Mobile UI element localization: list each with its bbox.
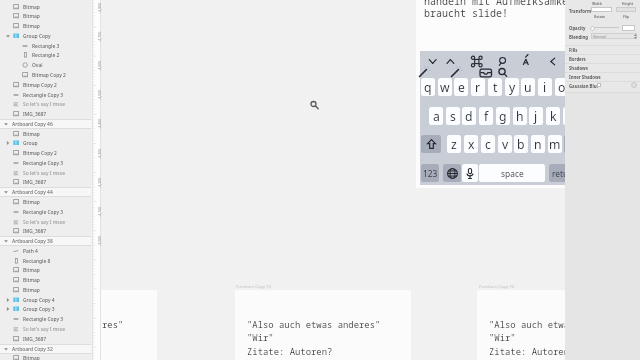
button[interactable]: Bitmap	[0, 11, 91, 21]
button[interactable]: y	[505, 78, 519, 96]
button[interactable]: Artboard Copy 32	[0, 344, 91, 354]
staticText: h	[516, 108, 524, 125]
button[interactable]: Inner Shadows	[565, 72, 640, 81]
button[interactable]: e	[454, 78, 468, 96]
staticText: "Also auch etwas anderes"	[247, 318, 381, 330]
button[interactable]: Rectangle Copy 3	[0, 158, 91, 168]
button[interactable]: Shadows	[565, 63, 640, 72]
staticText: w	[440, 79, 450, 96]
button[interactable]: space	[479, 164, 545, 182]
button[interactable]: IMG_3687	[0, 109, 91, 119]
button[interactable]: x	[464, 135, 478, 153]
button[interactable]: m	[548, 135, 562, 153]
button[interactable]: So let's say I msse	[0, 217, 91, 227]
button[interactable]: d	[462, 107, 476, 125]
button[interactable]: Group Copy	[0, 31, 91, 41]
button[interactable]: Artboard Copy 44	[0, 187, 91, 197]
button[interactable]: p	[571, 78, 585, 96]
staticText: Width	[592, 1, 602, 5]
staticText: Height	[622, 1, 634, 5]
staticText: Bitmap	[23, 267, 40, 274]
staticText: t	[493, 79, 498, 96]
button[interactable]: Rectangle Copy 3	[0, 207, 91, 217]
button[interactable]: IMG_3687	[0, 177, 91, 187]
staticText: d	[465, 108, 473, 125]
staticText: Bitmap	[23, 4, 40, 11]
button[interactable]: So let's say I msse	[0, 324, 91, 334]
button[interactable]: IMG_3687	[0, 226, 91, 236]
button[interactable]: return	[549, 164, 579, 182]
button[interactable]: n	[531, 135, 545, 153]
button[interactable]: Group Copy 3	[0, 304, 91, 314]
button[interactable]: Bitmap	[0, 197, 91, 207]
staticText: Bitmap	[23, 287, 40, 294]
button[interactable]: IMG_3687	[0, 334, 91, 344]
staticText: Bitmap	[23, 13, 40, 20]
button[interactable]: h	[513, 107, 527, 125]
staticText: res"	[102, 318, 124, 330]
button[interactable]: Gaussian Blur	[565, 81, 640, 90]
staticText: Bitmap Copy 2	[23, 150, 57, 157]
button[interactable]: Bitmap	[0, 2, 91, 12]
button[interactable]: Artboard Copy 38	[0, 236, 91, 246]
button[interactable]: w	[438, 78, 452, 96]
button[interactable]: Fills	[565, 45, 640, 54]
staticText: Bitmap	[23, 23, 40, 30]
staticText: Transform	[569, 8, 592, 14]
staticText: z	[451, 136, 457, 153]
button[interactable]: Bitmap	[0, 129, 91, 139]
staticText: Group Copy	[23, 33, 51, 40]
staticText: Furniture Copy 74	[479, 284, 515, 290]
button[interactable]: j	[529, 107, 543, 125]
button[interactable]: Rectangle 8	[0, 256, 91, 266]
staticText: Bitmap	[23, 355, 40, 360]
staticText: Rectangle 3	[32, 43, 60, 50]
button[interactable]: v	[498, 135, 512, 153]
button[interactable]: t	[488, 78, 502, 96]
button[interactable]: f	[479, 107, 493, 125]
staticText: Path 4	[23, 248, 38, 255]
button[interactable]: s	[446, 107, 460, 125]
button[interactable]: Rectangle Copy 3	[0, 90, 91, 100]
button[interactable]: So let's say I msse	[0, 99, 91, 109]
button[interactable]: Rectangle 3	[0, 41, 91, 51]
button[interactable]: Rectangle 2	[0, 50, 91, 60]
button[interactable]: Bitmap Copy 2	[0, 80, 91, 90]
staticText: braucht slide!	[424, 6, 508, 20]
button[interactable]: Group	[0, 138, 91, 148]
button[interactable]: Backspace	[564, 135, 584, 153]
button[interactable]: Oval	[0, 60, 91, 70]
staticText: Group Copy 3	[23, 306, 55, 313]
button[interactable]: Bitmap	[0, 265, 91, 275]
button[interactable]: g	[496, 107, 510, 125]
button[interactable]: o	[555, 78, 569, 96]
button[interactable]: Bitmap	[0, 21, 91, 31]
staticText: Rectangle Copy 3	[23, 160, 64, 167]
button[interactable]: a	[429, 107, 443, 125]
button[interactable]: Group Copy 4	[0, 295, 91, 305]
button[interactable]: Borders	[565, 54, 640, 63]
button[interactable]: Change keyboard	[443, 164, 461, 182]
button[interactable]: Shift	[421, 135, 441, 153]
button[interactable]: r	[471, 78, 485, 96]
button[interactable]: Bitmap Copy 2	[0, 70, 91, 80]
button[interactable]: u	[521, 78, 535, 96]
button[interactable]: Bitmap	[0, 275, 91, 285]
button[interactable]: l	[563, 107, 577, 125]
staticText: -4,300	[97, 148, 102, 159]
button[interactable]: Bitmap	[0, 285, 91, 295]
button[interactable]: Path 4	[0, 246, 91, 256]
button[interactable]: So let's say I msse	[0, 168, 91, 178]
button[interactable]: Bitmap Copy 2	[0, 148, 91, 158]
button[interactable]: Bitmap	[0, 353, 91, 360]
button[interactable]: 123	[421, 164, 439, 182]
button[interactable]: k	[546, 107, 560, 125]
button[interactable]: i	[538, 78, 552, 96]
button[interactable]: Artboard Copy 46	[0, 119, 91, 129]
button[interactable]: z	[447, 135, 461, 153]
button[interactable]: q	[421, 78, 435, 96]
button[interactable]: Dictate	[462, 164, 478, 182]
button[interactable]: c	[481, 135, 495, 153]
button[interactable]: b	[514, 135, 528, 153]
button[interactable]: Rectangle Copy 3	[0, 314, 91, 324]
